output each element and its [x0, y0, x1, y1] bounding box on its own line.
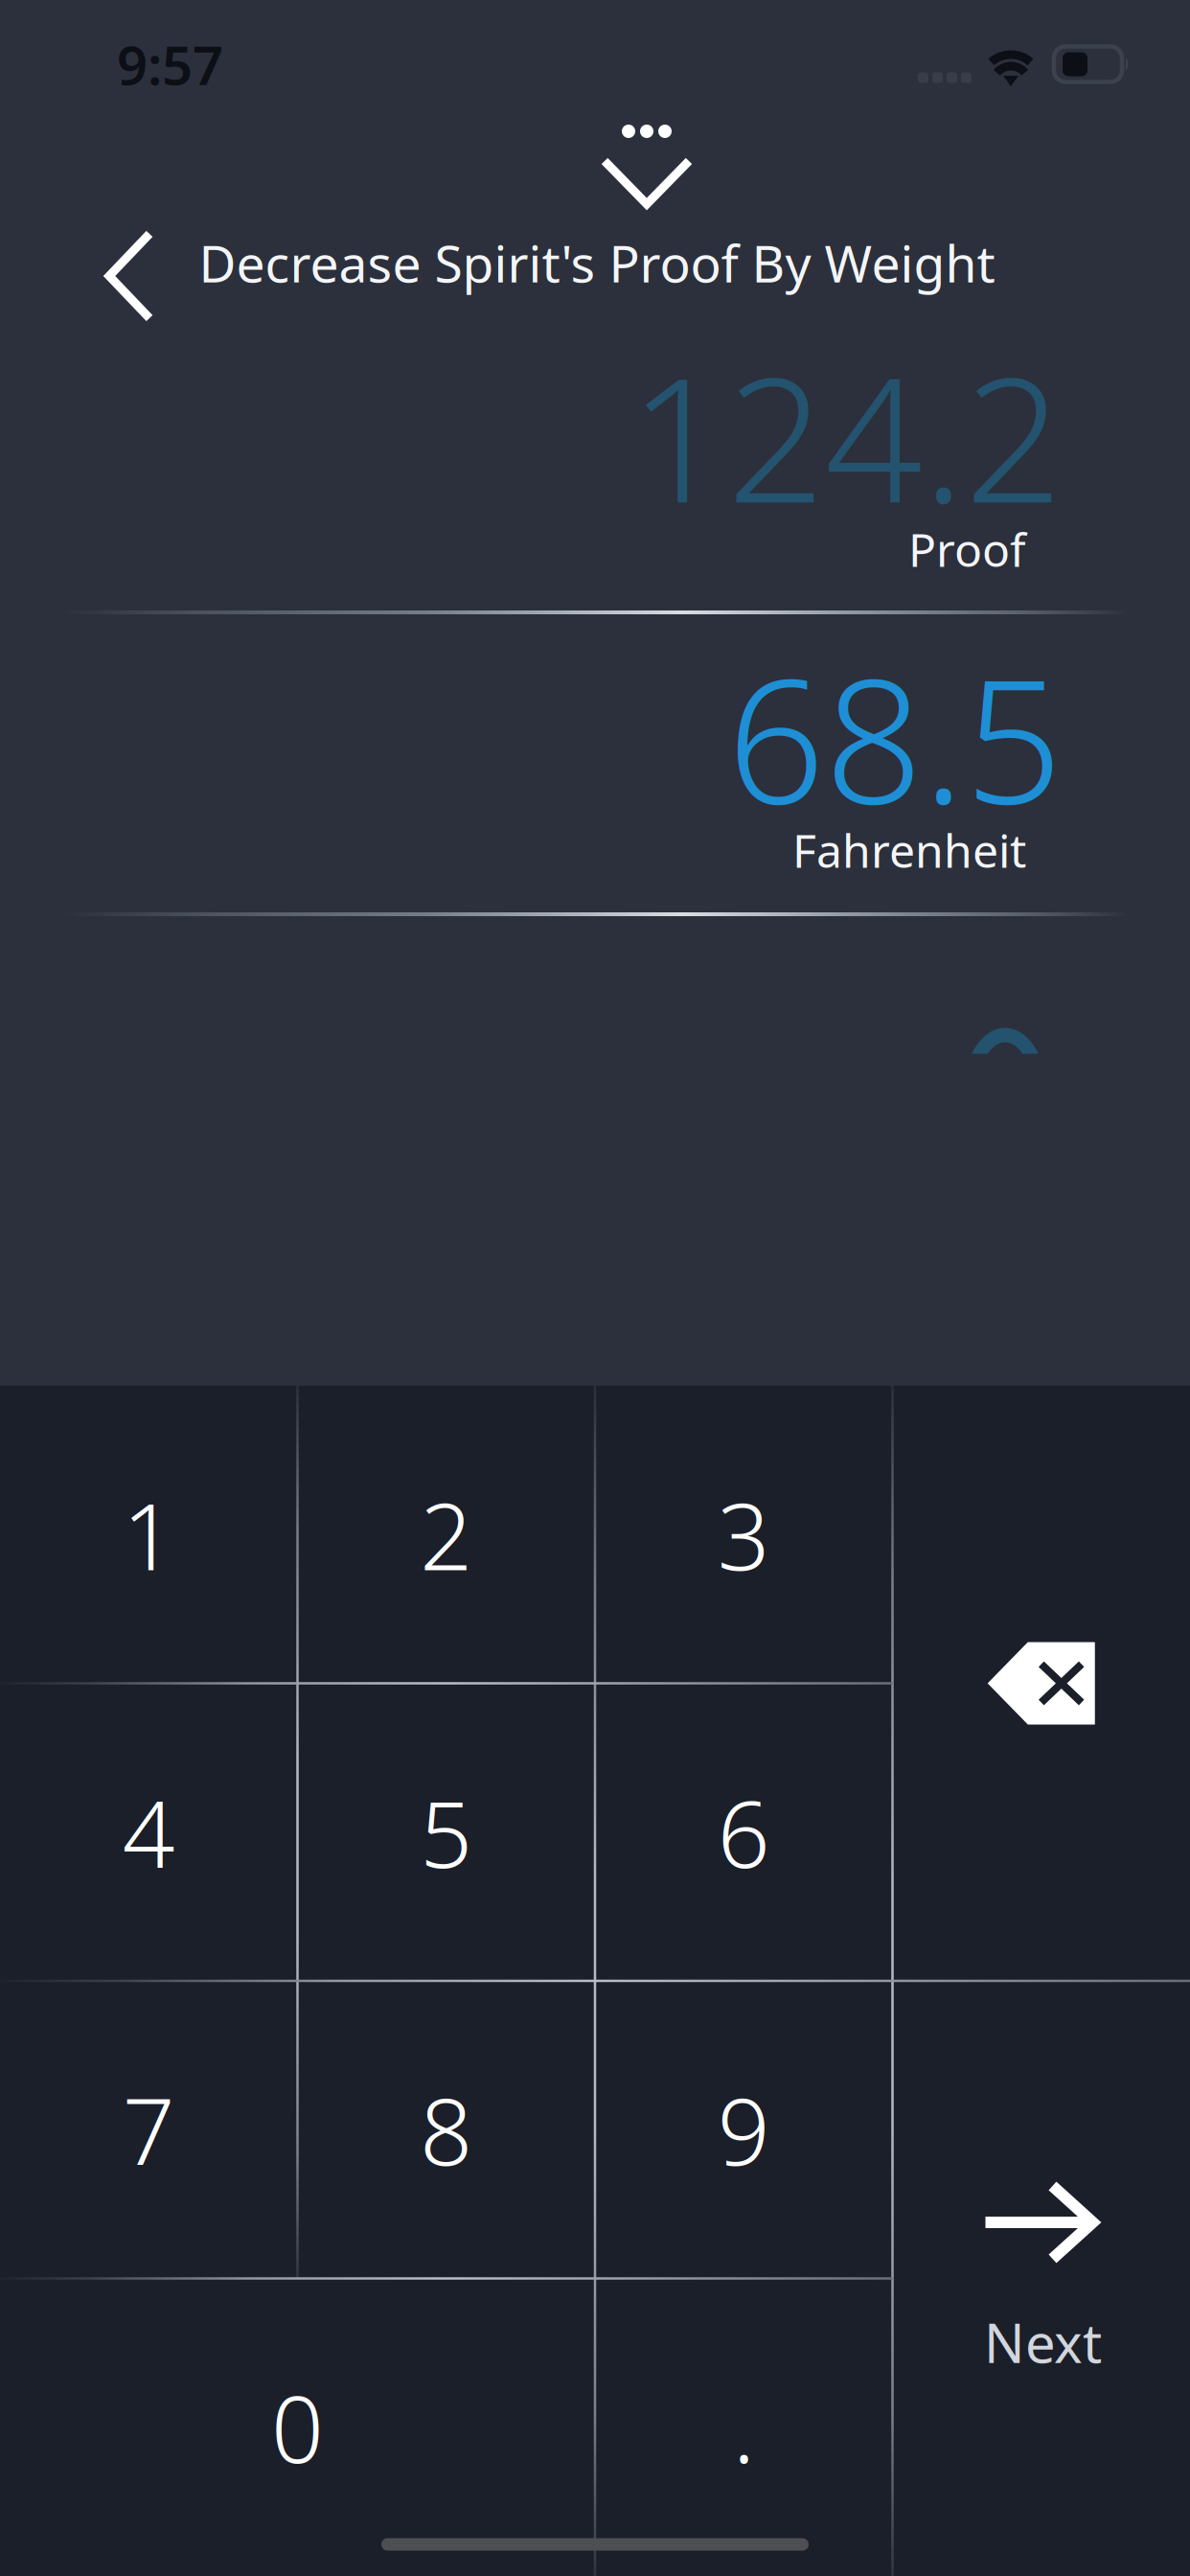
button[interactable]: Dismiss	[575, 96, 719, 220]
button[interactable]: 2	[297, 1386, 595, 1683]
button[interactable]: 4	[0, 1683, 297, 1981]
button[interactable]: 8	[297, 1981, 595, 2278]
staticText: 1	[122, 1473, 175, 1596]
button[interactable]: .	[595, 2278, 892, 2576]
staticText: 3	[717, 1473, 770, 1596]
staticText: 2	[420, 1473, 473, 1596]
staticText: 7	[122, 2069, 175, 2191]
button[interactable]: Next	[892, 1981, 1190, 2576]
staticText: Next	[984, 2307, 1102, 2378]
staticText: Decrease Spirit's Proof By Weight	[199, 229, 995, 297]
button[interactable]: 0	[0, 2278, 595, 2576]
button[interactable]: 9	[595, 1981, 892, 2278]
button[interactable]: 6	[595, 1683, 892, 1981]
staticText: 9	[717, 2069, 770, 2191]
staticText: 5	[420, 1771, 473, 1893]
staticText: 8	[420, 2069, 473, 2191]
staticText: 6	[717, 1771, 770, 1893]
staticText: 124.2	[629, 322, 1063, 550]
staticText: .	[733, 2366, 755, 2488]
staticText: Proof	[908, 519, 1026, 580]
button[interactable]: 1	[0, 1386, 297, 1683]
button[interactable]: 3	[595, 1386, 892, 1683]
button[interactable]: 5	[297, 1683, 595, 1981]
staticText: 9:57	[117, 29, 223, 100]
staticText: 0	[271, 2366, 324, 2488]
staticText: 4	[122, 1771, 175, 1893]
button[interactable]: Delete	[892, 1386, 1190, 1981]
staticText: Fahrenheit	[792, 819, 1026, 881]
button[interactable]: Back	[60, 200, 195, 344]
staticText: 68.5	[727, 623, 1063, 851]
button[interactable]: 7	[0, 1981, 297, 2278]
